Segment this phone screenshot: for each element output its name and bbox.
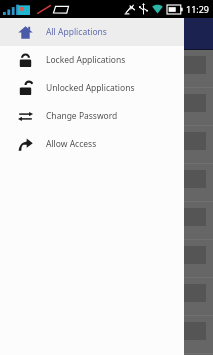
button[interactable]: Unlocked Applications: [0, 74, 184, 102]
button[interactable]: Locked Applications: [0, 46, 184, 74]
other: Allow Access: [18, 137, 33, 152]
button[interactable]: Change Password: [0, 102, 184, 130]
button[interactable]: Allow Access: [0, 130, 184, 158]
staticText: Allow Access: [46, 138, 97, 150]
staticText: Change Password: [46, 110, 118, 122]
staticText: 11:29: [186, 3, 210, 15]
other: All Applications: [18, 25, 33, 40]
other: Change Password: [18, 109, 33, 124]
other: Locked Applications: [18, 53, 33, 68]
button[interactable]: All Applications: [0, 18, 184, 46]
staticText: Locked Applications: [46, 54, 126, 66]
staticText: All Applications: [46, 26, 107, 38]
other: Unlocked Applications: [18, 81, 33, 96]
staticText: Unlocked Applications: [46, 82, 135, 94]
